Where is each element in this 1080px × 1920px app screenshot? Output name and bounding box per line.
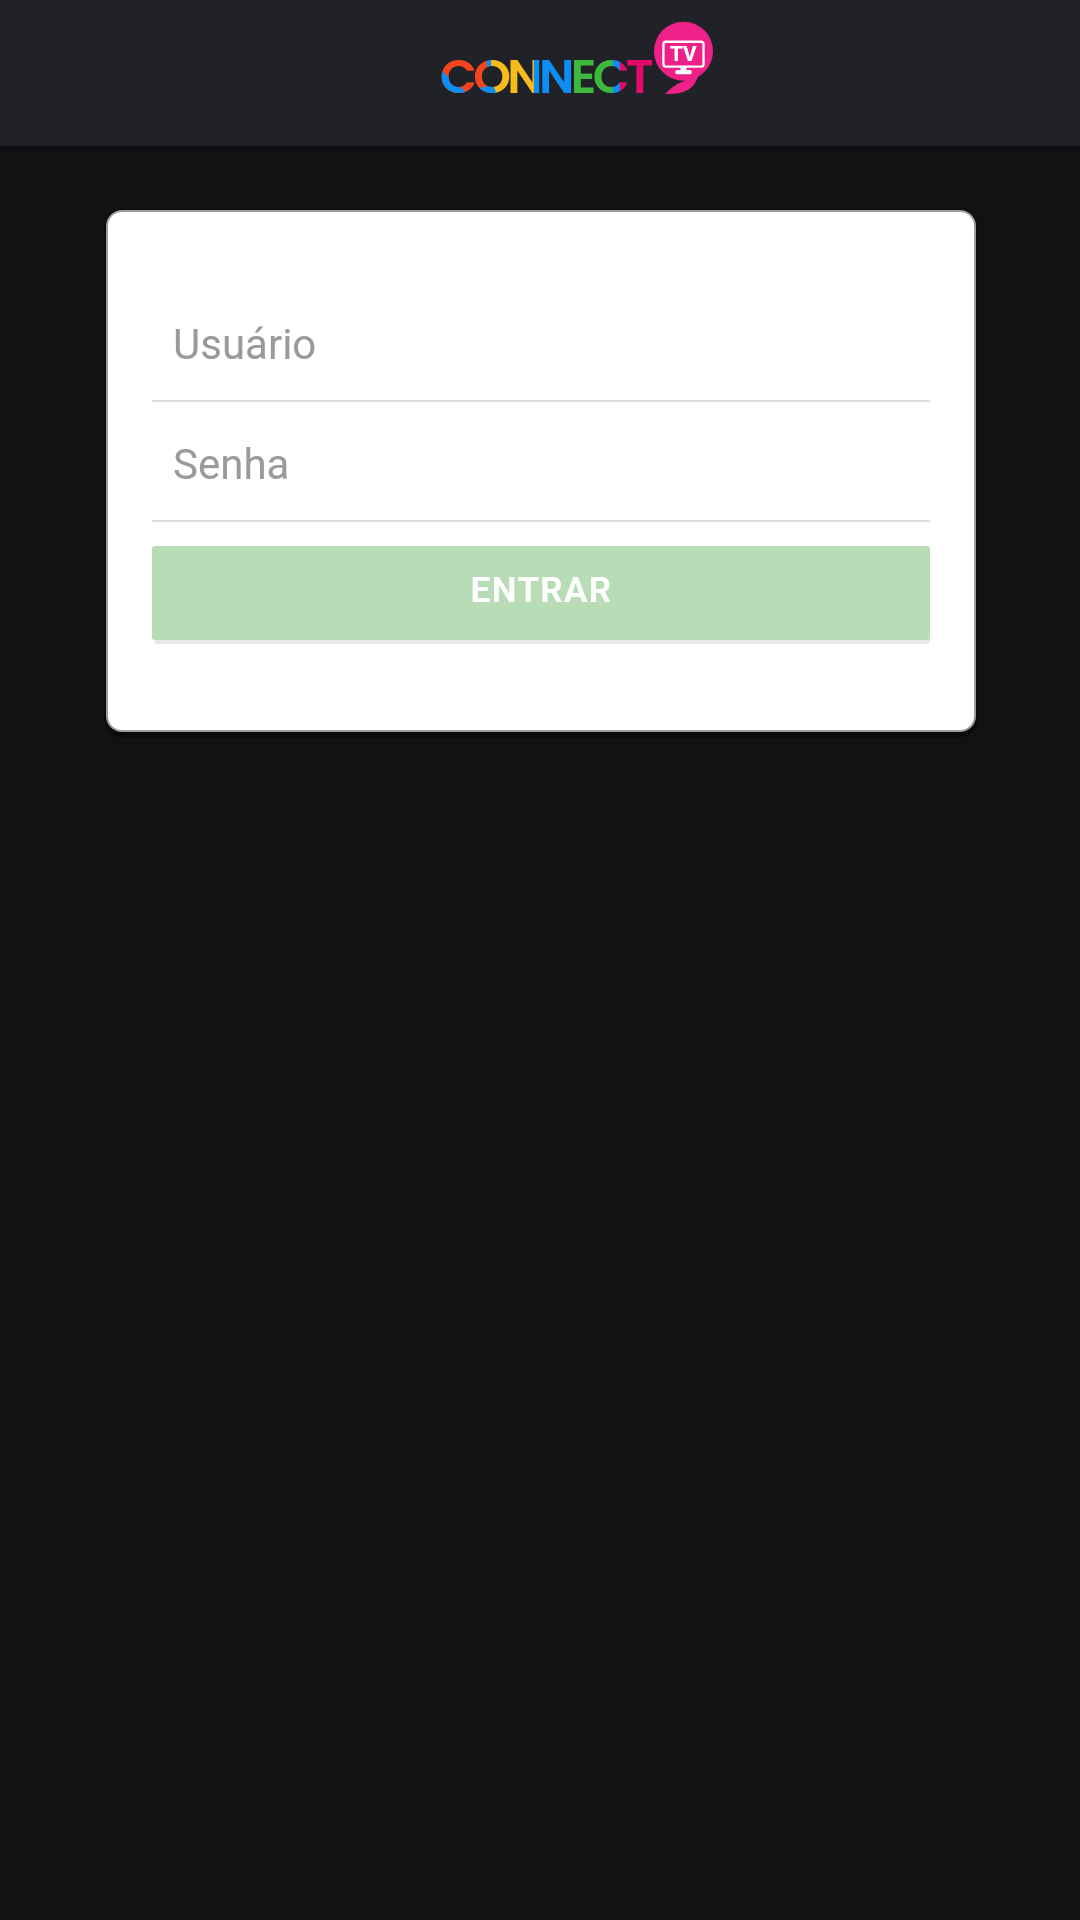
button[interactable]: Senha (152, 408, 930, 522)
button[interactable]: ENTRAR (152, 546, 930, 640)
other: Connect TV (0, 0, 1080, 146)
button[interactable]: Usuário (152, 288, 930, 402)
staticText: Usuário (173, 320, 317, 369)
staticText: ENTRAR (470, 570, 613, 611)
staticText: Senha (173, 440, 290, 489)
